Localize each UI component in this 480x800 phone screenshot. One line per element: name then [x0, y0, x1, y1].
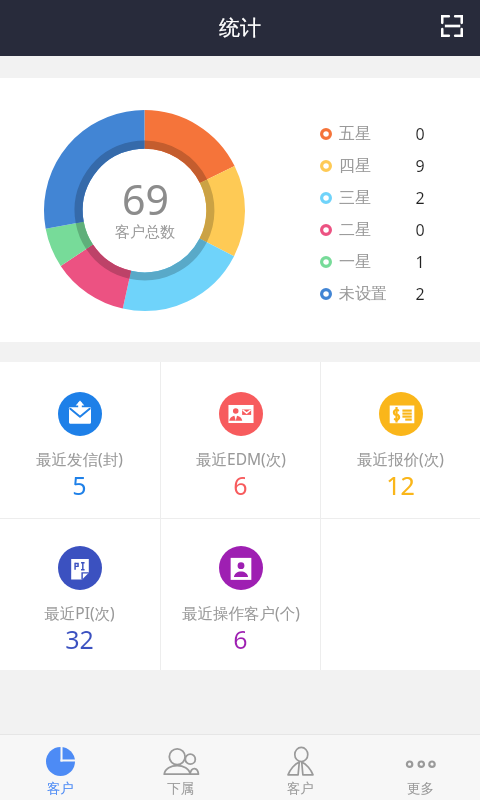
- button[interactable]: 更多: [360, 735, 480, 797]
- staticText: 更多: [407, 780, 434, 797]
- staticText: 统计: [219, 15, 261, 41]
- staticText: 客户: [47, 780, 74, 797]
- button[interactable]: 最近操作客户(个): [161, 516, 320, 671]
- staticText: 32: [65, 622, 94, 656]
- button[interactable]: 客户: [0, 735, 120, 797]
- staticText: 下属: [167, 780, 194, 797]
- button[interactable]: 四星: [320, 150, 438, 182]
- staticText: 9: [415, 155, 425, 177]
- button[interactable]: 最近发信(封): [0, 362, 159, 517]
- staticText: 五星: [339, 124, 371, 144]
- staticText: 未设置: [339, 284, 387, 304]
- button[interactable]: 下属: [120, 735, 240, 797]
- button[interactable]: 三星: [320, 182, 438, 214]
- button[interactable]: 一星: [320, 246, 438, 278]
- staticText: 最近报价(次): [357, 448, 444, 469]
- button[interactable]: 扫一扫: [428, 2, 476, 50]
- staticText: 6: [233, 468, 248, 502]
- staticText: 最近EDM(次): [196, 448, 286, 469]
- staticText: 一星: [339, 252, 371, 272]
- staticText: 客户总数: [115, 223, 175, 242]
- staticText: 最近PI(次): [44, 602, 115, 623]
- staticText: 6: [233, 622, 248, 656]
- button[interactable]: 最近EDM(次): [161, 362, 320, 517]
- button[interactable]: 未设置: [320, 278, 438, 310]
- staticText: 0: [415, 219, 425, 241]
- staticText: 5: [72, 468, 87, 502]
- staticText: 2: [415, 283, 425, 305]
- button[interactable]: 五星: [320, 118, 438, 150]
- button[interactable]: 二星: [320, 214, 438, 246]
- staticText: 12: [386, 468, 415, 502]
- staticText: 二星: [339, 220, 371, 240]
- staticText: 69: [122, 171, 169, 227]
- button[interactable]: 客户: [240, 735, 360, 797]
- staticText: 2: [415, 187, 425, 209]
- staticText: 三星: [339, 188, 371, 208]
- button[interactable]: 最近报价(次): [321, 362, 480, 517]
- staticText: 0: [415, 123, 425, 145]
- staticText: 最近操作客户(个): [182, 602, 300, 623]
- button[interactable]: 最近PI(次): [0, 516, 159, 671]
- staticText: 四星: [339, 156, 371, 176]
- staticText: 客户: [287, 780, 314, 797]
- staticText: 1: [415, 251, 425, 273]
- staticText: 最近发信(封): [36, 448, 123, 469]
